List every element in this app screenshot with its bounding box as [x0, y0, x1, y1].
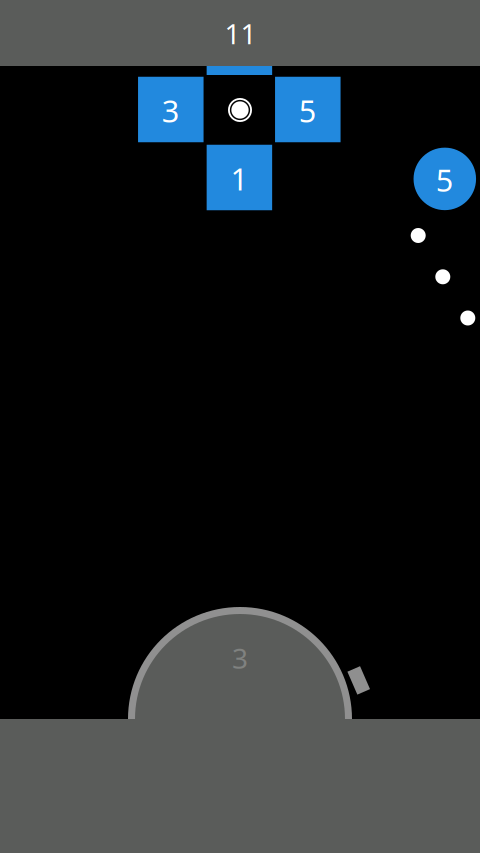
staticText: 3	[232, 639, 248, 677]
button[interactable]: 1	[207, 145, 272, 210]
button[interactable]: 3	[138, 77, 204, 142]
staticText: 5	[299, 90, 317, 131]
staticText: 11	[224, 15, 256, 52]
button[interactable]: Playfield, drag to aim	[0, 66, 480, 719]
button[interactable]: 5	[275, 77, 341, 142]
staticText: 3	[162, 90, 180, 131]
button[interactable]: 5	[414, 148, 476, 210]
staticText: 5	[436, 159, 454, 200]
staticText: 1	[230, 158, 248, 199]
